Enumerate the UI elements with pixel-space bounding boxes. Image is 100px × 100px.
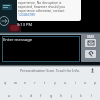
button[interactable]: j [66,92,76,98]
button[interactable]: h [56,92,66,98]
button[interactable]: r [30,79,40,85]
button[interactable]: Send [85,39,96,47]
staticText: i [75,80,76,85]
other: Voice input [90,68,95,73]
button[interactable]: t [40,79,50,85]
button[interactable]: p [90,79,100,85]
staticText: o [84,80,87,85]
button[interactable]: g [46,92,56,98]
staticText: l [91,93,92,98]
staticText: q [4,80,7,85]
button[interactable]: k [76,92,86,98]
staticText: e [24,80,27,85]
button[interactable]: f [36,92,46,98]
staticText: k [80,93,83,98]
staticText: d [30,93,33,98]
button[interactable]: i [70,79,80,85]
staticText: SMS [87,34,95,39]
staticText: h [60,93,63,98]
staticText: Enter message [3,37,33,43]
button[interactable]: q [0,79,10,85]
staticText: r [34,80,36,85]
staticText: experience otherwise, contact [18,8,65,12]
staticText: w [14,80,17,85]
staticText: 123456789 [18,12,35,16]
button[interactable]: y [50,79,60,85]
button[interactable]: u [60,79,70,85]
staticText: Personalisation Scan. Touch for Info. [20,68,80,73]
staticText: expected, however should you [18,4,66,8]
button[interactable]: Video thumbnail [0,0,17,32]
staticText: j [71,93,72,98]
button[interactable]: w [10,79,20,85]
button[interactable]: experience, No disruption is [17,0,81,21]
staticText: s [20,93,22,98]
button[interactable]: s [15,92,26,98]
staticText: experience, No disruption is [18,0,62,4]
staticText: p [94,80,97,85]
staticText: y [54,80,56,85]
button[interactable]: l [86,92,96,98]
staticText: a [8,93,11,98]
staticText: f [40,93,42,98]
staticText: g [50,93,53,98]
staticText: t [44,80,46,85]
staticText: u [64,80,67,85]
button[interactable]: o [80,79,90,85]
button[interactable]: d [26,92,36,98]
button[interactable]: Attach [85,50,96,58]
button[interactable]: e [20,79,30,85]
staticText: 9:13 PM [17,22,33,27]
button[interactable]: a [4,92,15,98]
button[interactable]: Enter message [2,36,80,62]
